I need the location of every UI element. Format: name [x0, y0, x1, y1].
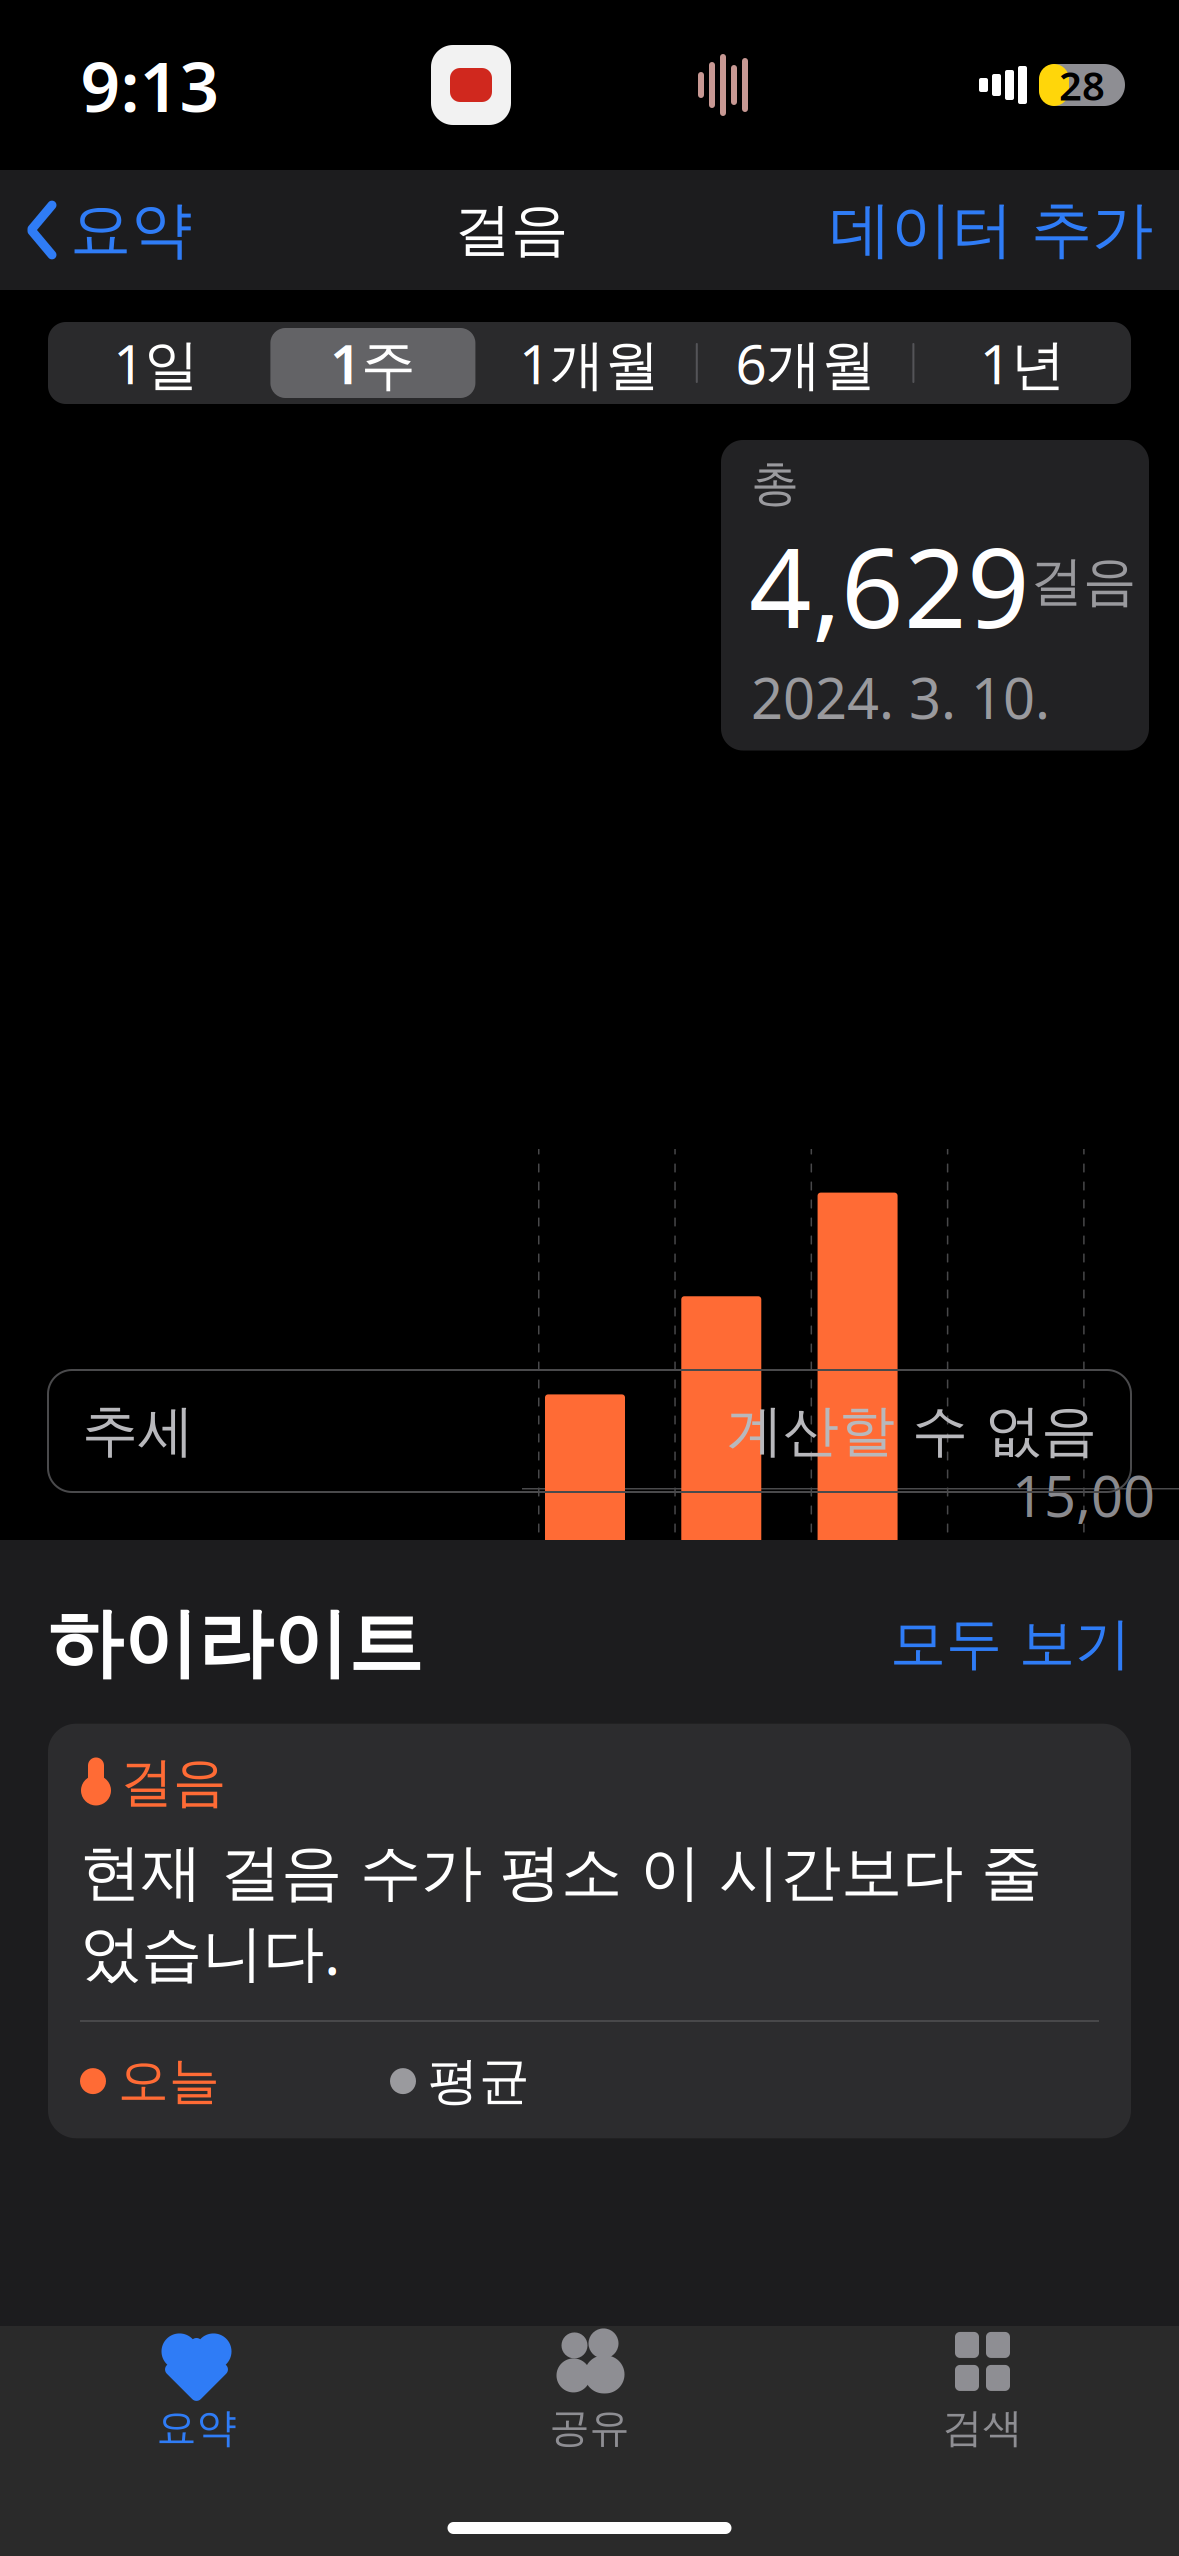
- staticText: 10,000: [1012, 1821, 1155, 1970]
- staticText: 추세: [82, 1397, 194, 1465]
- staticText: 검색: [942, 2403, 1022, 2452]
- staticText: 28: [1059, 58, 1105, 111]
- staticText: 모두 보기: [890, 1609, 1131, 1678]
- button[interactable]: 검색: [786, 2326, 1179, 2456]
- button[interactable]: 추세: [48, 1370, 1131, 1492]
- staticText: 15,000: [1012, 1458, 1155, 1607]
- staticText: 데이터 추가: [830, 192, 1153, 268]
- staticText: 6개월: [736, 327, 877, 399]
- button[interactable]: 6개월: [698, 322, 914, 404]
- staticText: 1주: [330, 327, 416, 399]
- staticText: 평균: [428, 2050, 530, 2112]
- button[interactable]: 모두 보기: [890, 1609, 1131, 1678]
- button[interactable]: 1개월: [481, 322, 698, 404]
- staticText: 걸음: [120, 1750, 226, 1815]
- staticText: 9:13: [80, 39, 219, 131]
- button[interactable]: 1일: [48, 322, 265, 404]
- staticText: 걸음: [454, 195, 568, 265]
- staticText: 요약: [70, 192, 192, 268]
- button[interactable]: 공유: [393, 2326, 786, 2456]
- staticText: 2024. 3. 10.: [751, 660, 1050, 734]
- staticText: 1일: [113, 327, 199, 399]
- staticText: 걸음: [1030, 549, 1136, 614]
- staticText: 공유: [549, 2403, 629, 2452]
- staticText: 4,629: [749, 513, 1030, 658]
- button[interactable]: 데이터 추가: [830, 184, 1179, 276]
- staticText: 총: [751, 454, 799, 513]
- staticText: 금: [1093, 1565, 1146, 1630]
- staticText: 1년: [980, 327, 1066, 399]
- button[interactable]: 1년: [914, 322, 1131, 404]
- staticText: 1개월: [519, 327, 660, 399]
- button[interactable]: 1주: [265, 322, 481, 404]
- staticText: 목: [957, 1565, 1010, 1630]
- staticText: 계산할 수 없음: [727, 1397, 1097, 1465]
- staticText: 현재 걸음 수가 평소 이 시간보다 줄었습니다.: [80, 1835, 1042, 1992]
- button[interactable]: 걸음: [48, 1724, 1131, 2138]
- staticText: 요약: [156, 2403, 236, 2452]
- staticText: 오늘: [118, 2050, 220, 2112]
- staticText: 하이라이트: [48, 1598, 423, 1690]
- button[interactable]: 요약: [0, 184, 192, 276]
- button[interactable]: 요약: [0, 2326, 393, 2456]
